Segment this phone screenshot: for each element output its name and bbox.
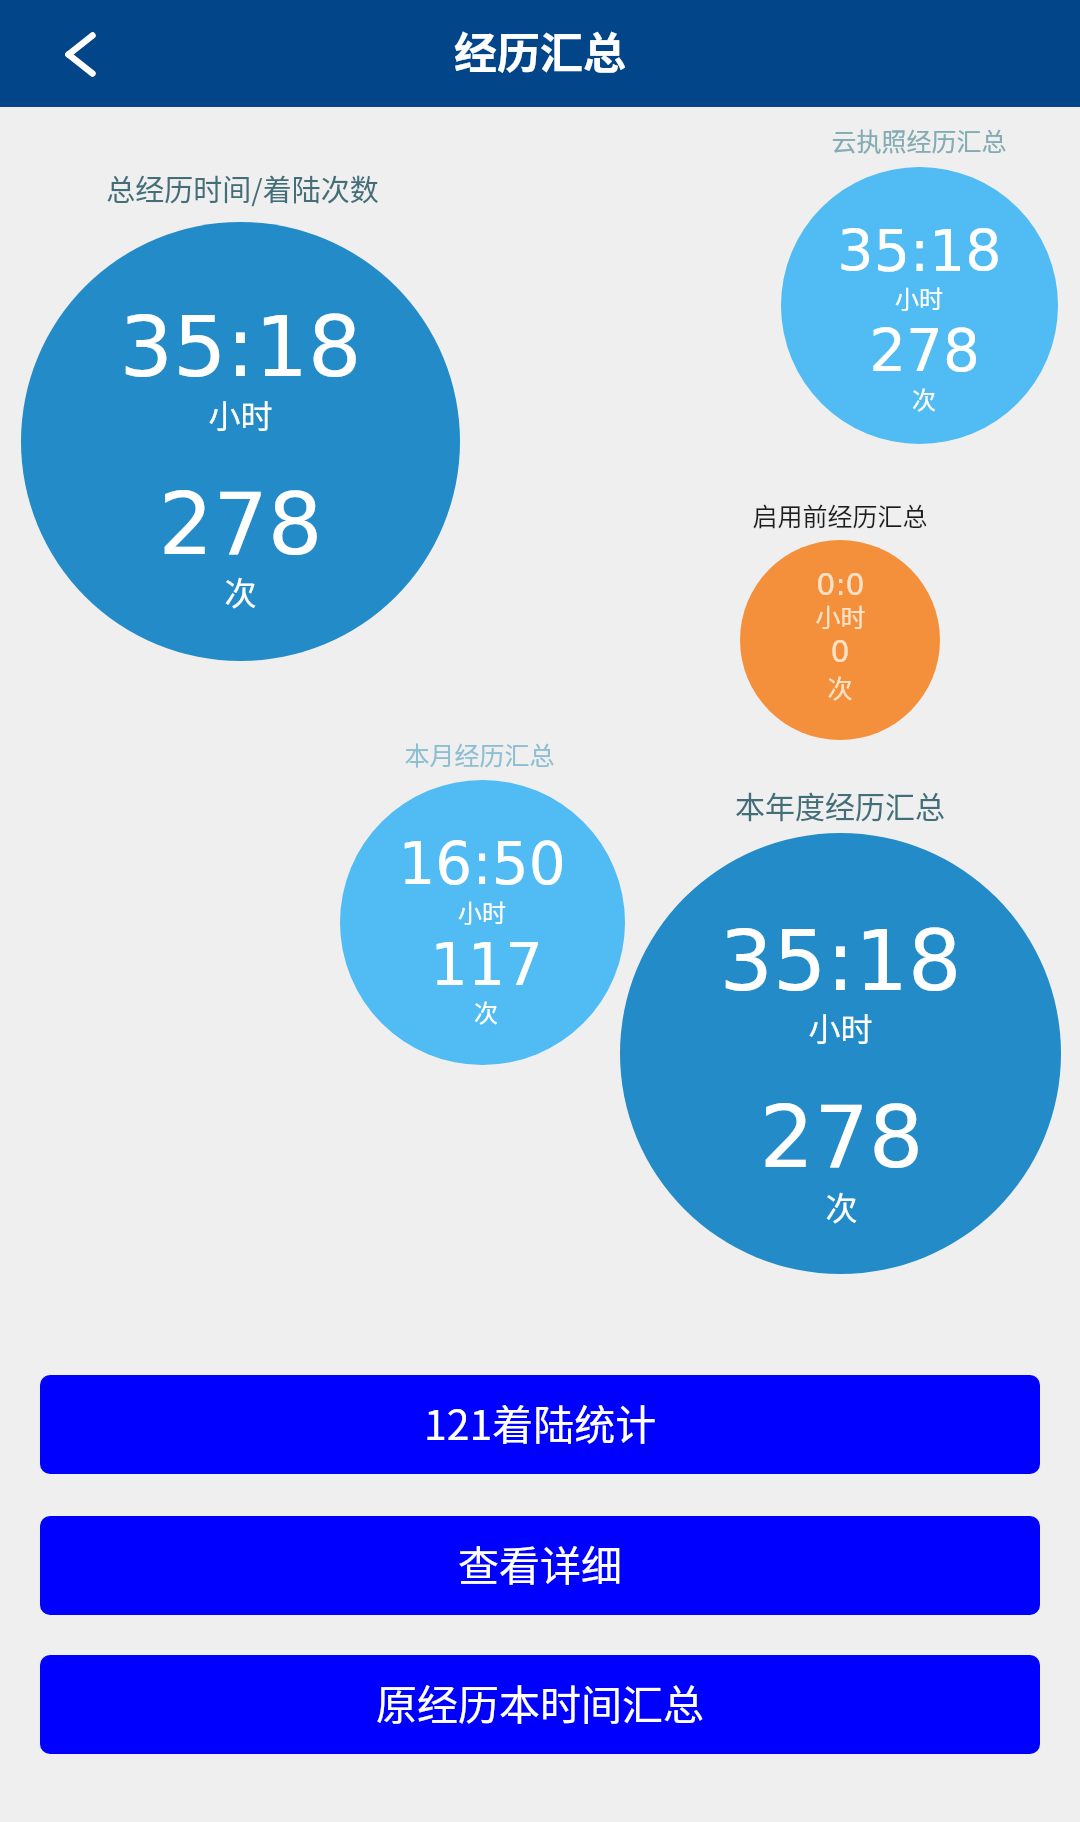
staticText: 本年度经历汇总 [735,783,945,826]
staticText: 次 [912,381,936,416]
staticText: 本月经历汇总 [404,736,555,772]
button[interactable]: 查看详细 [40,1516,1040,1615]
button[interactable]: 本年度经历汇总 [620,833,1061,1274]
staticText: 云执照经历汇总 [831,122,1007,158]
staticText: 小时 [208,391,273,437]
staticText: 35:18 [837,218,1002,284]
staticText: 启用前经历汇总 [752,497,928,533]
button[interactable]: 原经历本时间汇总 [40,1655,1040,1754]
staticText: 278 [158,474,323,574]
staticText: 查看详细 [458,1533,622,1592]
staticText: 经历汇总 [454,19,626,81]
staticText: 次 [224,568,257,614]
staticText: 次 [827,669,853,705]
button[interactable]: 121着陆统计 [40,1375,1040,1474]
staticText: 小时 [808,1004,873,1050]
button[interactable]: 云执照经历汇总 [781,167,1058,444]
staticText: 小时 [458,894,506,929]
staticText: 次 [825,1183,858,1229]
staticText: 0 [830,634,850,669]
staticText: 117 [430,930,543,999]
staticText: 小时 [895,280,943,315]
button[interactable]: 启用前经历汇总 [740,540,940,740]
staticText: 121着陆统计 [424,1392,657,1451]
staticText: 35:18 [119,298,362,396]
staticText: 278 [759,1087,924,1187]
staticText: 总经历时间/着陆次数 [106,167,379,209]
staticText: 35:18 [719,912,962,1010]
button[interactable]: 总经历时间/着陆次数 [21,222,460,661]
button[interactable]: Back [48,22,113,87]
staticText: 278 [869,317,980,385]
button[interactable]: 本月经历汇总 [340,780,625,1065]
staticText: 小时 [815,598,866,634]
staticText: 0:0 [816,567,865,602]
staticText: 16:50 [398,830,566,898]
staticText: 原经历本时间汇总 [376,1672,704,1731]
staticText: 次 [474,994,498,1029]
